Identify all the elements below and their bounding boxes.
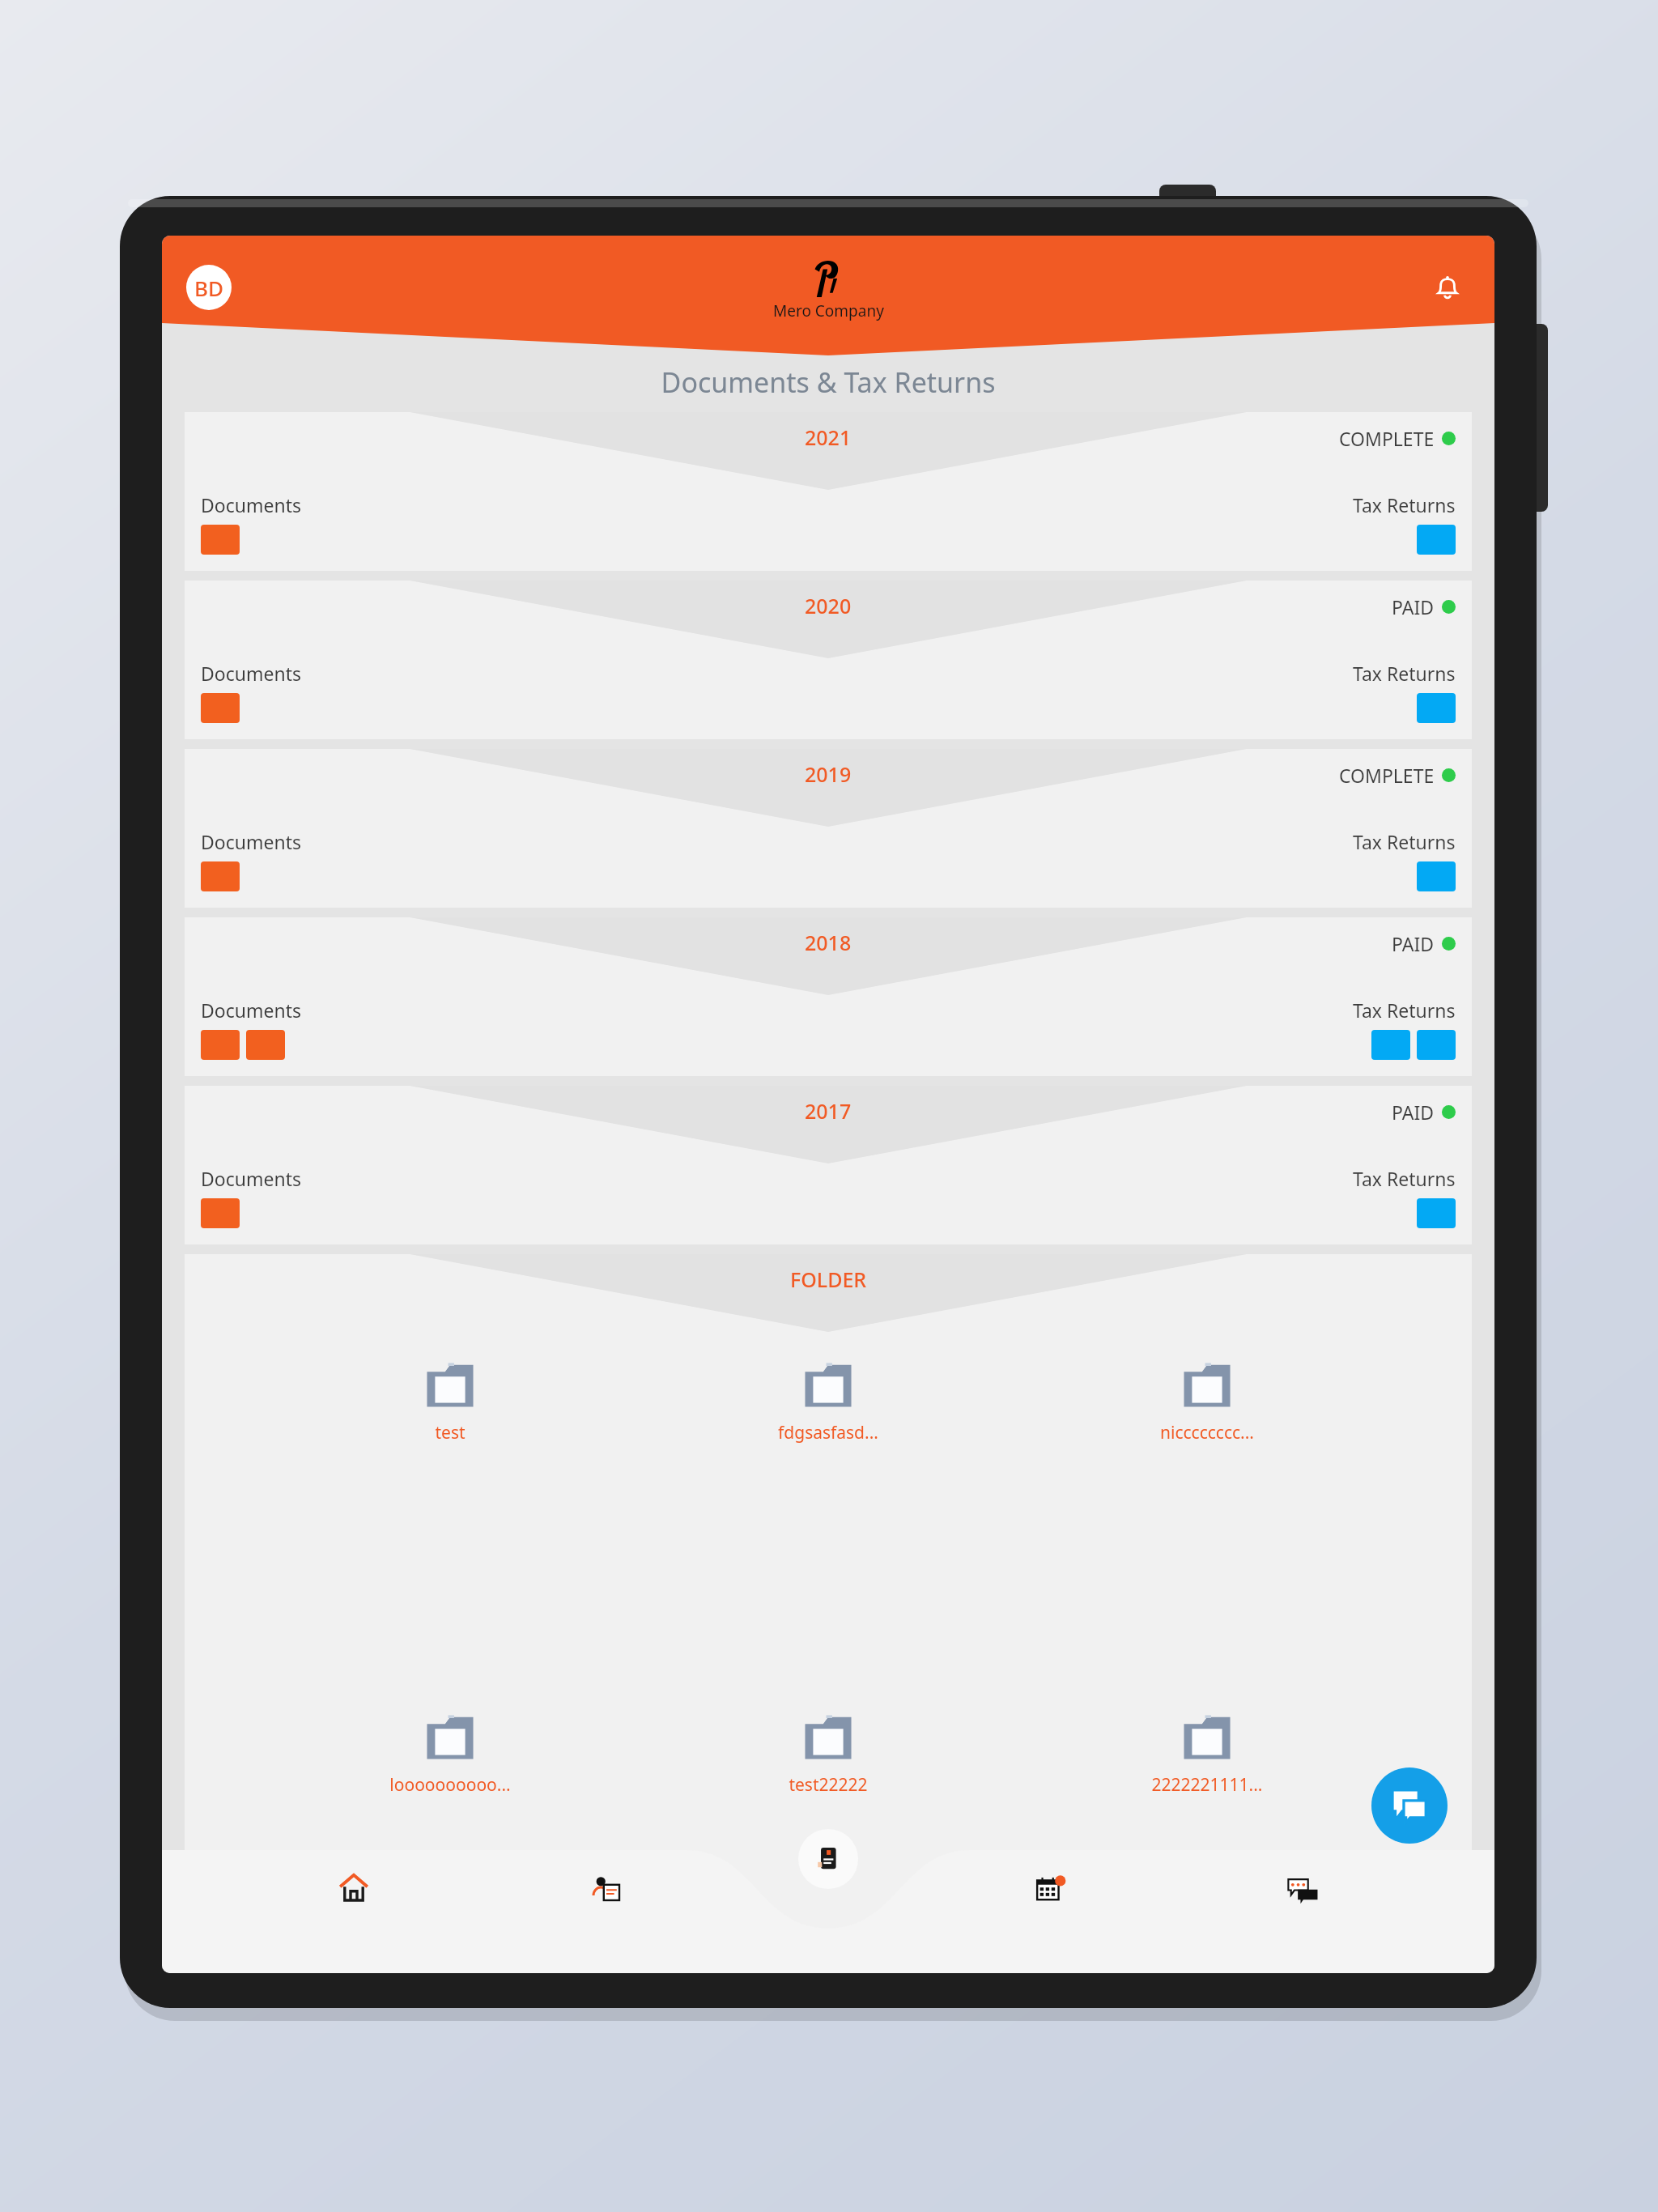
- staticText: 2020: [805, 592, 852, 619]
- button[interactable]: Document: [246, 1030, 285, 1060]
- button[interactable]: 2020: [185, 581, 1472, 739]
- staticText: Documents: [201, 661, 301, 686]
- staticText: test: [435, 1421, 466, 1444]
- button[interactable]: 2021: [185, 412, 1472, 571]
- staticText: 2019: [805, 760, 852, 788]
- button[interactable]: Chat: [1371, 1767, 1448, 1844]
- button[interactable]: test: [337, 1361, 563, 1444]
- staticText: Documents: [201, 1166, 301, 1191]
- button[interactable]: Home: [293, 1871, 414, 1936]
- staticText: FOLDER: [790, 1266, 867, 1293]
- staticText: Tax Returns: [1353, 1166, 1456, 1191]
- staticText: Tax Returns: [1353, 492, 1456, 517]
- button[interactable]: Tax return: [1371, 1030, 1410, 1060]
- button[interactable]: 2019: [185, 749, 1472, 908]
- staticText: Documents: [201, 829, 301, 854]
- button[interactable]: Calendar: [989, 1871, 1111, 1936]
- staticText: Documents & Tax Returns: [162, 364, 1494, 401]
- button[interactable]: Notifications: [1425, 265, 1470, 310]
- button[interactable]: Clients: [546, 1871, 667, 1936]
- button[interactable]: Document: [201, 525, 240, 555]
- button[interactable]: BD: [186, 265, 232, 310]
- staticText: COMPLETE: [1339, 426, 1435, 451]
- staticText: Documents: [201, 492, 301, 517]
- button[interactable]: Tax return: [1417, 525, 1456, 555]
- button[interactable]: Tax return: [1417, 693, 1456, 723]
- staticText: test22222: [789, 1773, 868, 1797]
- staticText: nicccccccc...: [1160, 1421, 1254, 1444]
- staticText: 2021: [805, 423, 852, 451]
- button[interactable]: Messages: [1242, 1871, 1363, 1936]
- staticText: 2017: [805, 1097, 852, 1125]
- button[interactable]: Tax return: [1417, 861, 1456, 891]
- staticText: 2222221111...: [1151, 1773, 1263, 1797]
- button[interactable]: Mero Company: [773, 257, 884, 321]
- staticText: COMPLETE: [1339, 763, 1435, 788]
- staticText: Tax Returns: [1353, 998, 1456, 1023]
- button[interactable]: nicccccccc...: [1094, 1361, 1320, 1444]
- staticText: BD: [194, 274, 224, 302]
- button[interactable]: Tax return: [1417, 1198, 1456, 1228]
- button[interactable]: test22222: [715, 1713, 942, 1797]
- staticText: PAID: [1392, 1100, 1435, 1125]
- staticText: fdgsasfasd...: [778, 1421, 878, 1444]
- button[interactable]: 2017: [185, 1086, 1472, 1244]
- button[interactable]: fdgsasfasd...: [715, 1361, 942, 1444]
- button[interactable]: 2222221111...: [1094, 1713, 1320, 1797]
- staticText: 2018: [805, 929, 852, 956]
- staticText: Tax Returns: [1353, 661, 1456, 686]
- staticText: Documents: [201, 998, 301, 1023]
- staticText: loooooooooo...: [389, 1773, 511, 1797]
- button[interactable]: Document: [201, 861, 240, 891]
- button[interactable]: Tax return: [1417, 1030, 1456, 1060]
- button[interactable]: loooooooooo...: [337, 1713, 563, 1797]
- staticText: Mero Company: [773, 300, 884, 321]
- button[interactable]: Document: [201, 1030, 240, 1060]
- staticText: PAID: [1392, 594, 1435, 619]
- button[interactable]: Document: [201, 1198, 240, 1228]
- button[interactable]: Documents: [798, 1829, 858, 1889]
- staticText: PAID: [1392, 931, 1435, 956]
- button[interactable]: 2018: [185, 917, 1472, 1076]
- staticText: Tax Returns: [1353, 829, 1456, 854]
- button[interactable]: Document: [201, 693, 240, 723]
